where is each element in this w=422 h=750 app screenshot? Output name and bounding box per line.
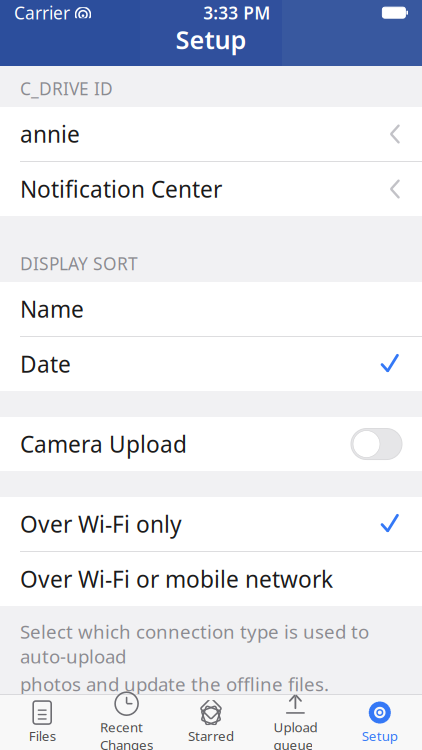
staticText: Name — [20, 294, 84, 324]
staticText: 3:33 PM — [203, 1, 270, 24]
button[interactable]: Starred — [169, 698, 253, 747]
staticText: Carrier — [14, 1, 70, 24]
button[interactable]: Setup — [338, 698, 422, 747]
staticText: Notification Center — [20, 174, 222, 204]
button[interactable]: Name — [0, 282, 422, 337]
staticText: Set up password — [20, 722, 197, 750]
staticText: DISPLAY SORT — [20, 252, 138, 275]
staticText: Select which connection type is used to … — [20, 619, 369, 669]
staticText: photos and update the offline files. — [20, 672, 329, 696]
staticText: Starred — [188, 727, 234, 745]
staticText: Upload queue — [273, 718, 317, 750]
button[interactable]: Over Wi-Fi only — [0, 497, 422, 552]
button[interactable]: Recent Changes — [84, 698, 169, 747]
staticText: Over Wi-Fi only — [20, 509, 182, 539]
button[interactable]: Set up password — [0, 710, 422, 750]
button[interactable]: Notification Center — [0, 162, 422, 216]
staticText: Recent Changes — [100, 718, 153, 750]
button[interactable]: Over Wi-Fi or mobile network — [0, 552, 422, 606]
button[interactable]: Date — [0, 337, 422, 391]
staticText: Files — [29, 727, 56, 745]
button[interactable]: Upload queue — [253, 698, 338, 747]
staticText: Over Wi-Fi or mobile network — [20, 564, 333, 594]
button[interactable]: Camera Upload — [0, 417, 422, 471]
staticText: Camera Upload — [20, 429, 187, 459]
staticText: Date — [20, 349, 71, 379]
staticText: annie — [20, 119, 80, 149]
staticText: C_DRIVE ID — [20, 77, 113, 100]
button[interactable]: Files — [0, 698, 84, 747]
staticText: Setup — [175, 23, 246, 56]
staticText: Setup — [362, 727, 398, 745]
button[interactable]: annie — [0, 107, 422, 162]
